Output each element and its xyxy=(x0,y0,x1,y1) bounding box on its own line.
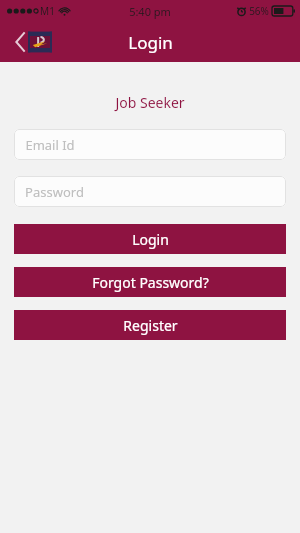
button[interactable]: Password xyxy=(14,176,286,207)
staticText: Login xyxy=(128,31,173,54)
staticText: M1 xyxy=(40,4,55,18)
staticText: Login xyxy=(132,230,169,249)
staticText: Forgot Password? xyxy=(92,273,209,292)
staticText: Password xyxy=(25,183,84,201)
staticText: 5:40 pm xyxy=(129,4,171,19)
button[interactable]: Back xyxy=(10,28,30,56)
button[interactable]: Email Id xyxy=(14,129,286,160)
staticText: Job Seeker xyxy=(115,93,185,112)
button[interactable]: App logo xyxy=(28,29,52,55)
staticText: Email Id xyxy=(25,136,75,154)
button[interactable]: Forgot Password? xyxy=(14,267,286,297)
button[interactable]: Register xyxy=(14,310,286,340)
button[interactable]: Login xyxy=(14,224,286,254)
staticText: 56% xyxy=(249,4,269,18)
staticText: Register xyxy=(123,316,178,335)
